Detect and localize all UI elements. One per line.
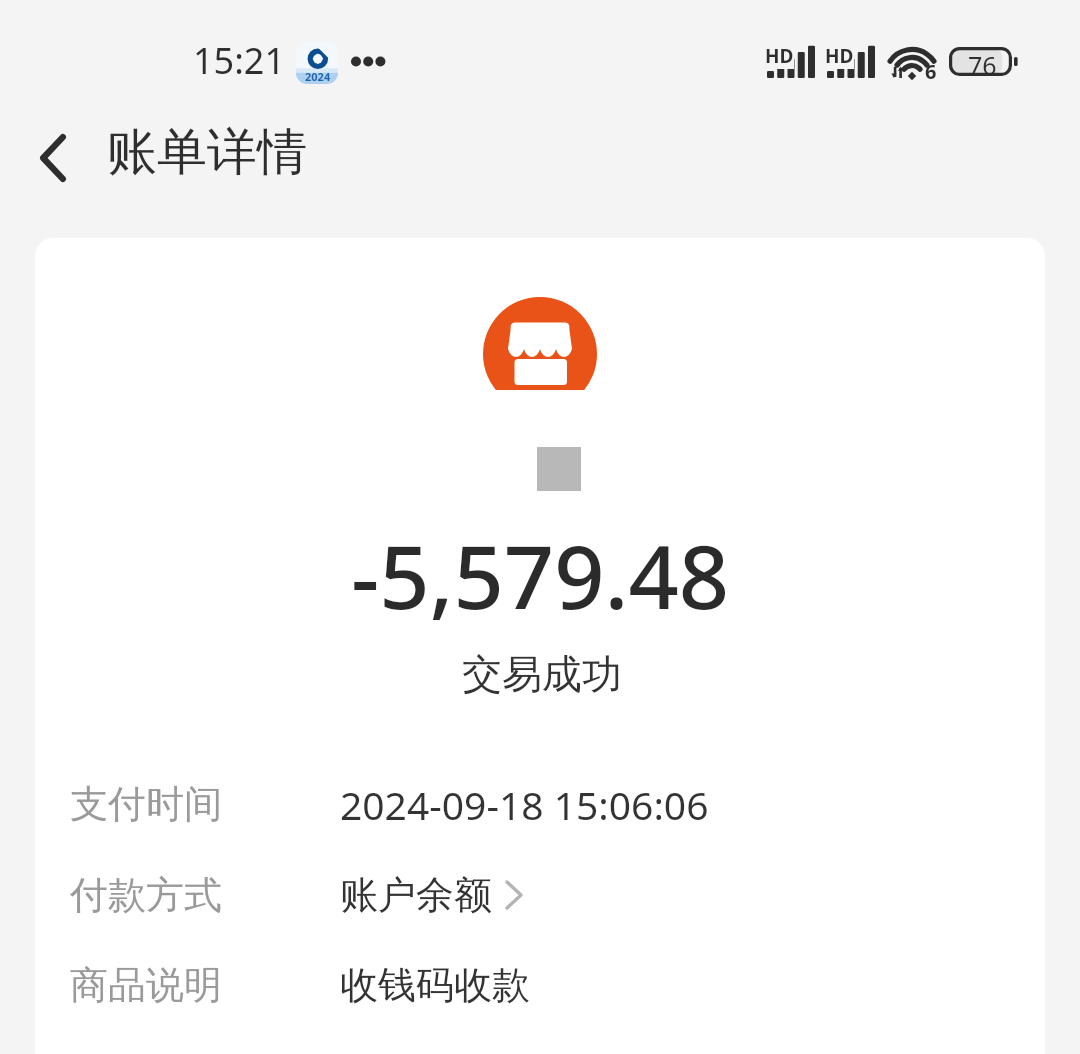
staticText: 15:21: [193, 36, 286, 85]
staticText: 收钱码收款: [340, 961, 530, 1009]
staticText: 付款方式: [70, 871, 222, 919]
staticText: HD: [765, 43, 794, 69]
button[interactable]: Back: [9, 114, 97, 202]
staticText: 交易成功: [37, 649, 1045, 699]
staticText: 2024-09-18 15:06:06: [340, 778, 709, 831]
other: App icon: [296, 42, 338, 84]
button[interactable]: 商品说明: [35, 940, 1045, 1030]
staticText: 2024: [305, 69, 331, 84]
staticText: 商品说明: [70, 961, 222, 1009]
staticText: 账户余额: [340, 871, 492, 919]
staticText: 账单详情: [107, 121, 307, 184]
staticText: HD: [825, 43, 854, 69]
button[interactable]: 付款方式: [35, 850, 1045, 940]
staticText: 6: [925, 58, 937, 85]
staticText: 支付时间: [70, 780, 222, 828]
button[interactable]: 支付时间: [35, 759, 1045, 849]
button[interactable]: More: [351, 56, 385, 67]
staticText: -5,579.48: [35, 515, 1045, 635]
staticText: 76: [968, 48, 997, 77]
button[interactable]: Merchant: [483, 297, 597, 390]
